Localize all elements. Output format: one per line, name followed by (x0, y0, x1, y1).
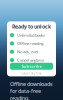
button[interactable]: Close (10, 23, 16, 29)
staticText: Cancel any time (21, 72, 42, 75)
staticText: No ads, ever (17, 49, 39, 54)
staticText: Unlimited books (17, 32, 45, 38)
staticText: Offline downloads for data-free reading. (10, 80, 53, 100)
staticText: Offline reading (17, 41, 43, 46)
staticText: Cancel anytime (17, 57, 44, 63)
staticText: ✕ (11, 24, 14, 29)
staticText: Subscribe (21, 64, 41, 69)
staticText: Ready to unlock (12, 23, 51, 30)
button[interactable]: Subscribe (10, 63, 53, 70)
